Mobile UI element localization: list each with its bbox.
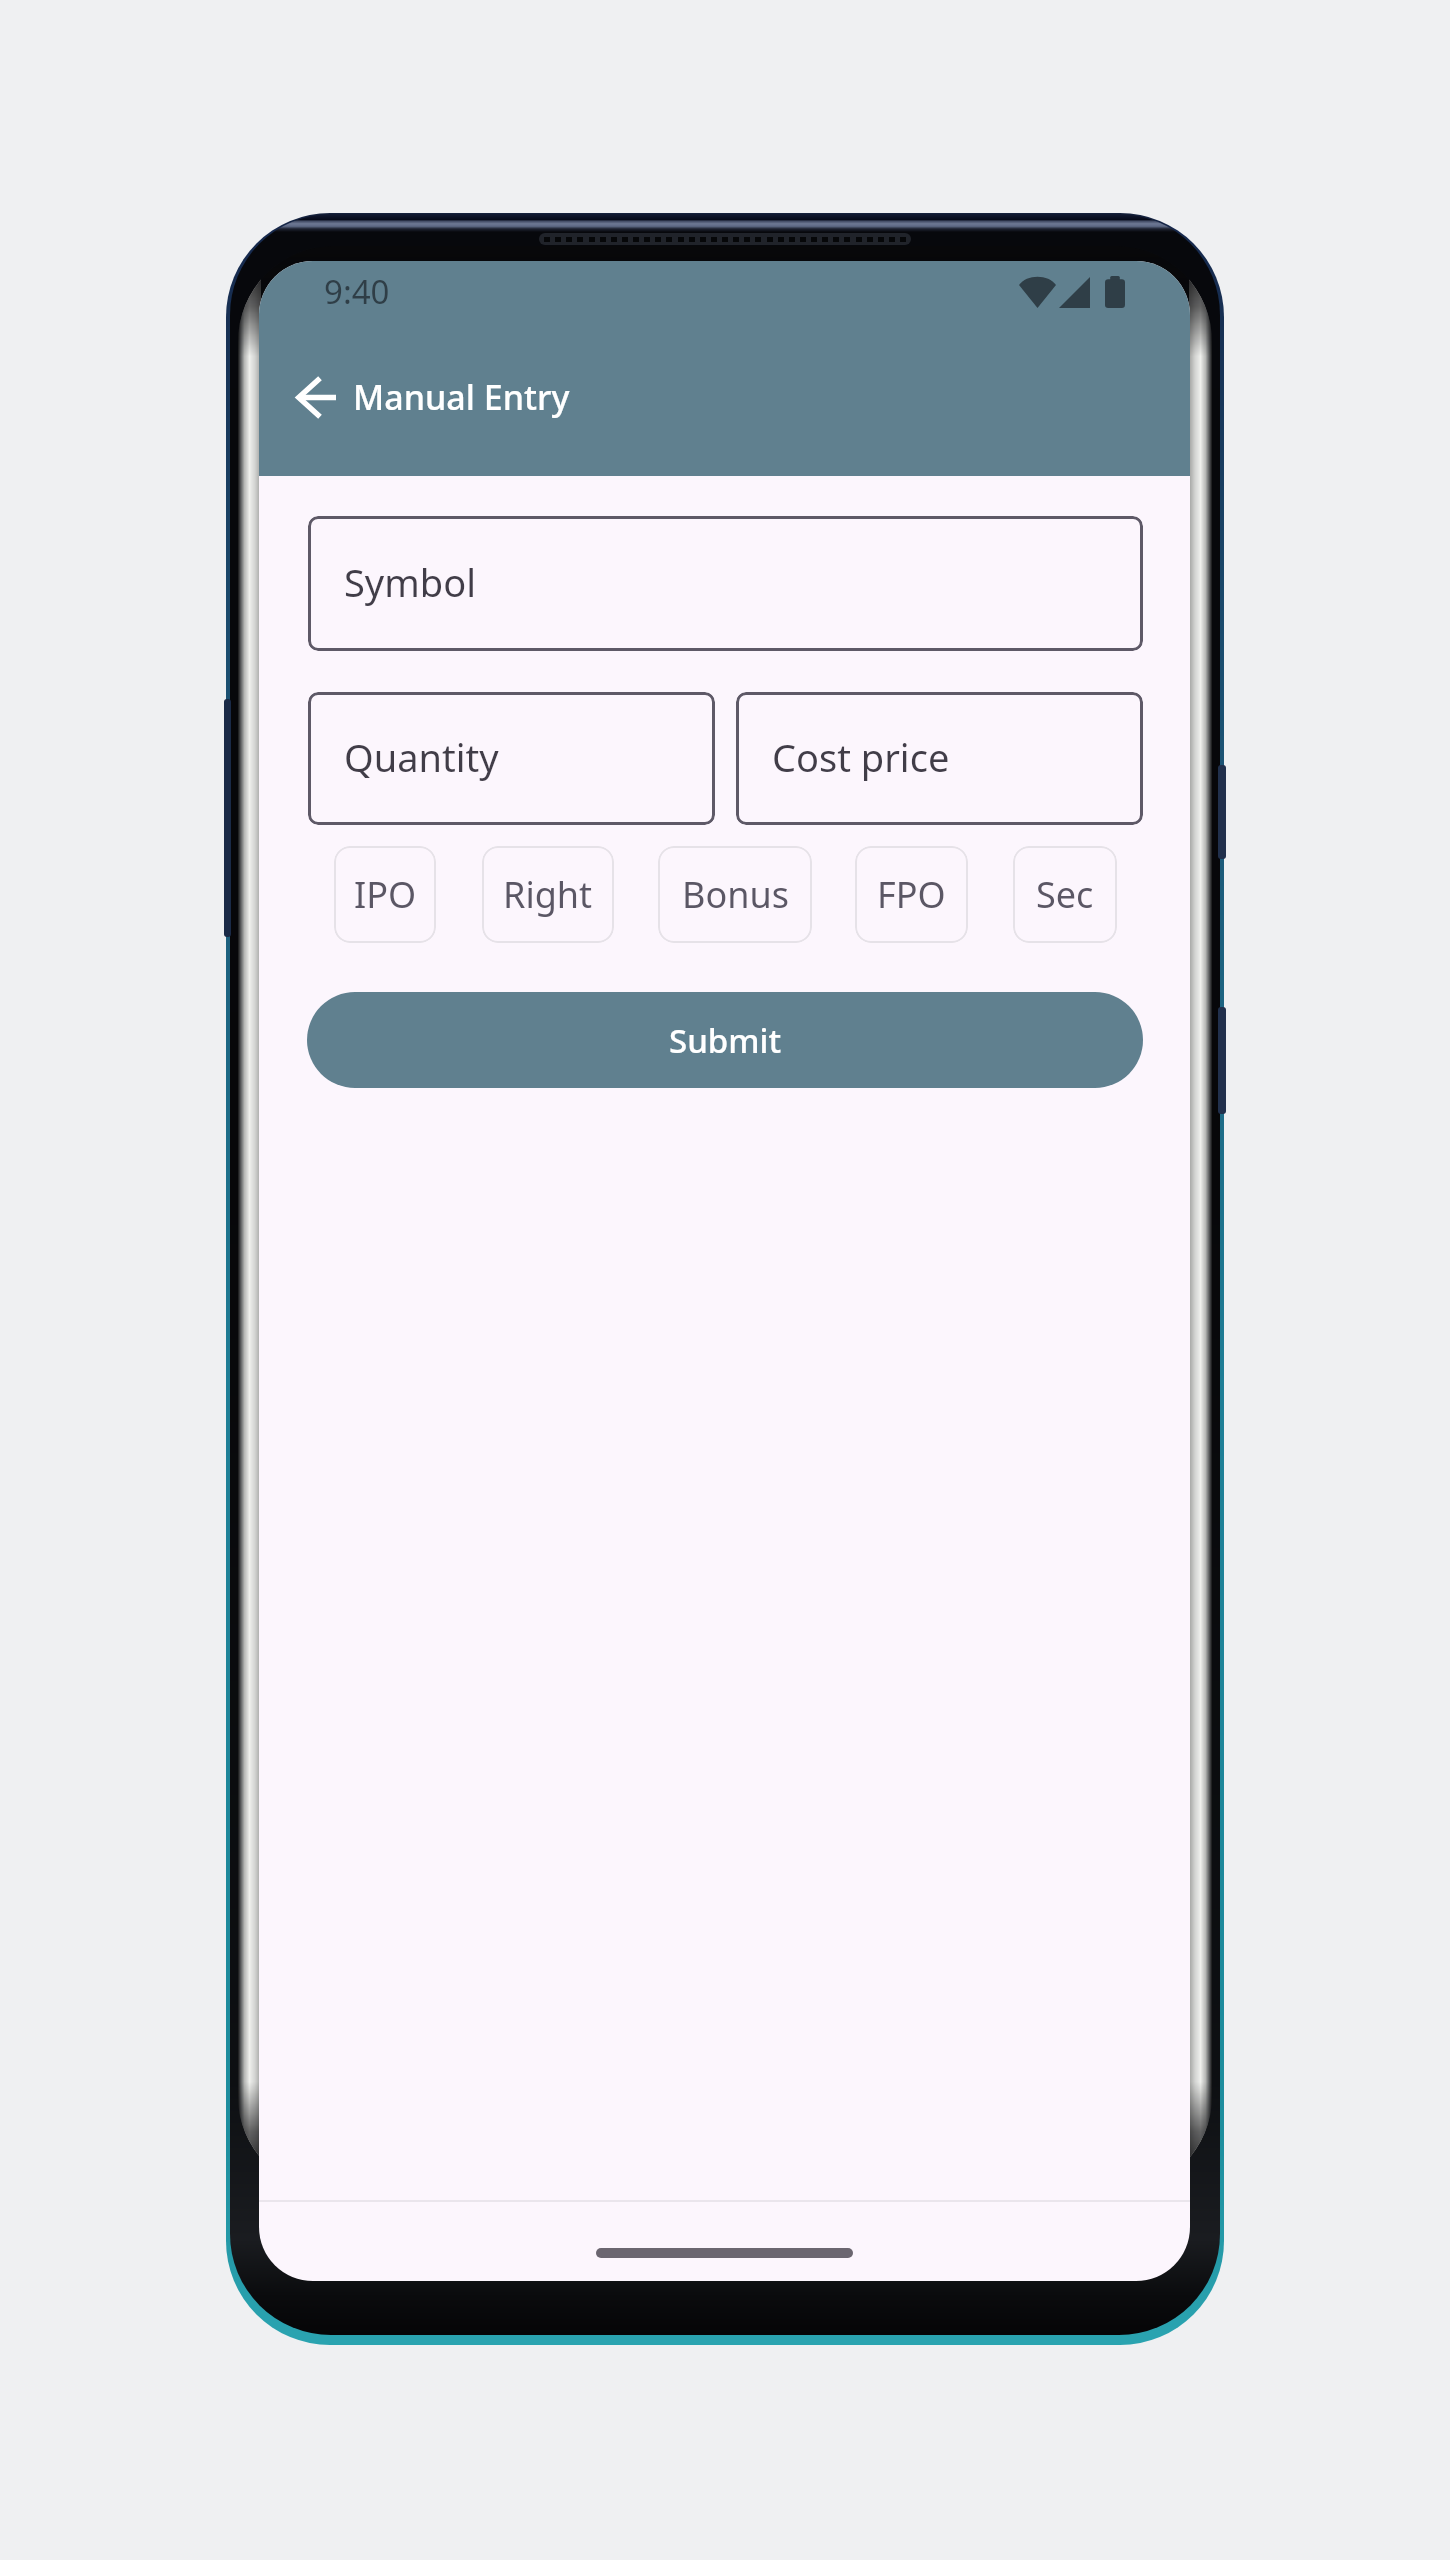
staticText: Manual Entry [353, 374, 570, 420]
button[interactable]: Sec [1013, 846, 1117, 943]
staticText: 9:40 [324, 269, 390, 314]
button[interactable]: Quantity [308, 692, 715, 825]
staticText: Symbol [344, 556, 476, 608]
staticText: Submit [669, 1018, 782, 1063]
button[interactable]: Bonus [658, 846, 812, 943]
staticText: Right [503, 870, 593, 919]
button[interactable]: Submit [307, 992, 1143, 1088]
button[interactable]: Back [274, 355, 358, 439]
staticText: Quantity [344, 731, 499, 783]
button[interactable]: Right [482, 846, 614, 943]
staticText: IPO [354, 870, 417, 919]
staticText: Cost price [772, 731, 950, 783]
staticText: Bonus [682, 870, 789, 919]
button[interactable]: IPO [334, 846, 436, 943]
staticText: Sec [1036, 870, 1094, 919]
button[interactable]: FPO [855, 846, 968, 943]
staticText: FPO [877, 870, 946, 919]
button[interactable]: Cost price [736, 692, 1143, 825]
button[interactable]: Symbol [308, 516, 1143, 651]
